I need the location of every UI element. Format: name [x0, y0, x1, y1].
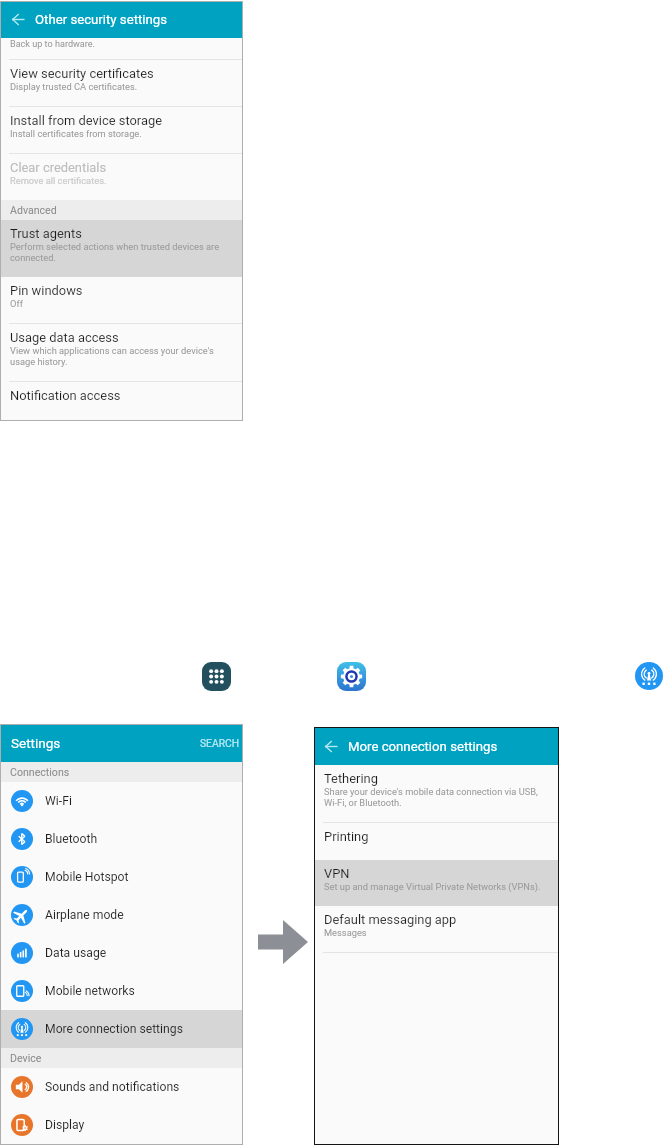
button[interactable]: Default messaging app — [314, 906, 559, 952]
button[interactable]: Wi-Fi — [0, 782, 243, 820]
button[interactable]: Back — [1, 1, 242, 38]
staticText: Settings — [11, 735, 61, 751]
staticText: Share your device's mobile data connecti… — [324, 786, 550, 808]
staticText: Usage data access — [10, 330, 119, 345]
staticText: Install certificates from storage. — [10, 128, 142, 139]
button[interactable]: Usage data access — [0, 324, 243, 381]
staticText: Trust agents — [10, 226, 82, 241]
staticText: Back up to hardware. — [10, 39, 96, 50]
staticText: Connections — [10, 766, 70, 778]
staticText: Set up and manage Virtual Private Networ… — [324, 881, 541, 892]
staticText: Off — [10, 298, 23, 309]
staticText: Mobile networks — [45, 984, 135, 998]
button[interactable]: Pin windows — [0, 277, 243, 323]
button[interactable]: SEARCH — [196, 724, 242, 762]
staticText: VPN — [324, 866, 350, 881]
staticText: Data usage — [45, 946, 107, 960]
staticText: Advanced — [10, 204, 57, 216]
staticText: More connection settings — [348, 739, 498, 754]
staticText: Tethering — [324, 771, 378, 786]
staticText: Bluetooth — [45, 832, 98, 846]
staticText: Notification access — [10, 388, 121, 403]
button[interactable]: Settings — [337, 662, 366, 691]
button[interactable]: Data usage — [0, 934, 243, 972]
button[interactable]: Notification access — [0, 382, 243, 419]
button[interactable]: More connection settings — [0, 1010, 243, 1048]
staticText: Display — [45, 1118, 85, 1132]
button[interactable]: Apps — [202, 662, 231, 691]
button[interactable]: Clear credentials — [0, 154, 243, 200]
button[interactable]: View security certificates — [0, 60, 243, 106]
staticText: Clear credentials — [10, 160, 107, 175]
staticText: SEARCH — [200, 737, 240, 749]
button[interactable]: Airplane mode — [0, 896, 243, 934]
staticText: Install from device storage — [10, 113, 163, 128]
button[interactable]: Back — [314, 727, 559, 765]
staticText: Device — [10, 1052, 42, 1064]
button[interactable]: Back — [314, 727, 348, 765]
button[interactable]: More connection settings — [635, 662, 663, 690]
button[interactable]: VPN — [314, 860, 559, 906]
staticText: Airplane mode — [45, 908, 124, 922]
button[interactable]: Printing — [314, 823, 559, 860]
button[interactable]: Back — [1, 1, 35, 38]
staticText: Mobile Hotspot — [45, 870, 129, 884]
button[interactable]: Trust agents — [0, 220, 243, 277]
staticText: More connection settings — [45, 1022, 183, 1036]
staticText: Pin windows — [10, 283, 83, 298]
button[interactable]: Bluetooth — [0, 820, 243, 858]
button[interactable]: Install from device storage — [0, 107, 243, 153]
button[interactable]: Tethering — [314, 765, 559, 822]
staticText: Other security settings — [35, 12, 167, 27]
staticText: Perform selected actions when trusted de… — [10, 241, 234, 263]
staticText: Default messaging app — [324, 912, 457, 927]
button[interactable]: Mobile Hotspot — [0, 858, 243, 896]
staticText: Display trusted CA certificates. — [10, 81, 138, 92]
staticText: View security certificates — [10, 66, 154, 81]
staticText: Remove all certificates. — [10, 175, 107, 186]
staticText: Messages — [324, 927, 367, 938]
staticText: View which applications can access your … — [10, 345, 234, 367]
button[interactable]: Mobile networks — [0, 972, 243, 1010]
staticText: Wi-Fi — [45, 794, 72, 808]
button[interactable]: Sounds and notifications — [0, 1068, 243, 1106]
staticText: Printing — [324, 829, 369, 844]
button[interactable]: Display — [0, 1106, 243, 1144]
staticText: Sounds and notifications — [45, 1080, 180, 1094]
